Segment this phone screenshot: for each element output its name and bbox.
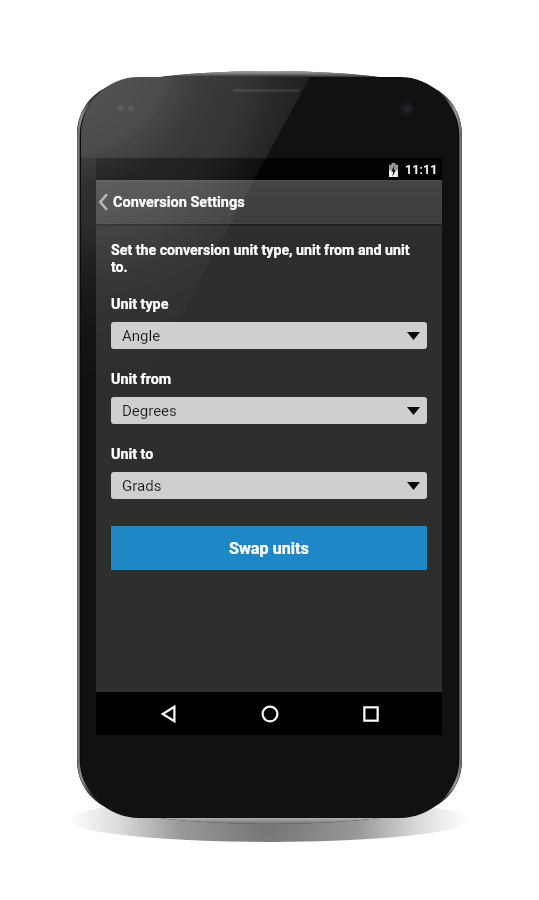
- staticText: 11:11: [405, 162, 438, 177]
- staticText: Unit to: [111, 446, 154, 463]
- button[interactable]: Home: [219, 692, 320, 735]
- staticText: Angle: [122, 327, 161, 345]
- staticText: Degrees: [122, 402, 177, 420]
- staticText: Swap units: [229, 539, 309, 558]
- button[interactable]: Back: [118, 692, 219, 735]
- button[interactable]: Grads: [111, 472, 427, 499]
- staticText: Grads: [122, 477, 162, 495]
- button[interactable]: Angle: [111, 322, 427, 349]
- staticText: Set the conversion unit type, unit from …: [111, 242, 414, 276]
- button[interactable]: Swap units: [111, 526, 427, 570]
- staticText: Unit type: [111, 296, 169, 313]
- staticText: Conversion Settings: [113, 194, 245, 211]
- staticText: Unit from: [111, 371, 172, 388]
- button[interactable]: Recent apps: [320, 692, 421, 735]
- button[interactable]: Degrees: [111, 397, 427, 424]
